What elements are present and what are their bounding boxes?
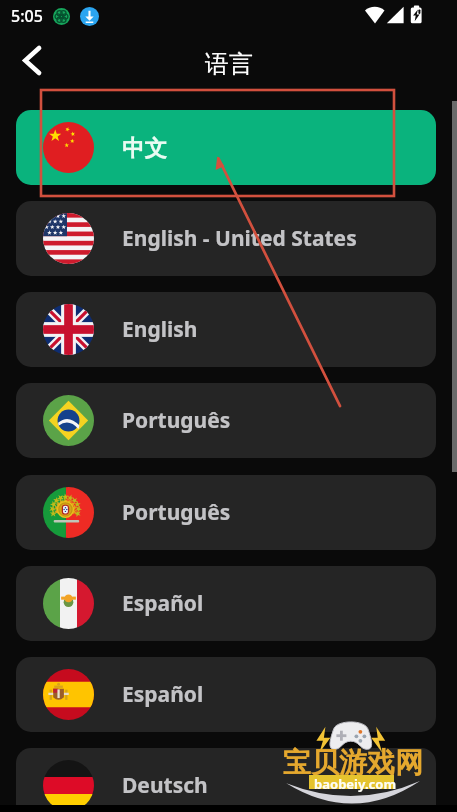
button[interactable]: Português: [16, 383, 436, 458]
staticText: English - United States: [122, 224, 357, 253]
staticText: Español: [122, 680, 204, 709]
button[interactable]: 中文: [16, 110, 436, 185]
staticText: baobeiy.com: [314, 775, 397, 793]
button[interactable]: Português: [16, 475, 436, 550]
button[interactable]: English - United States: [16, 201, 436, 276]
staticText: 5:05: [11, 5, 43, 27]
staticText: Español: [122, 589, 204, 618]
button[interactable]: Español: [16, 566, 436, 641]
staticText: 宝贝游戏网: [283, 745, 423, 780]
button[interactable]: Back: [16, 44, 49, 77]
staticText: Português: [122, 498, 231, 527]
button[interactable]: Español: [16, 657, 436, 732]
staticText: 中文: [122, 134, 167, 162]
button[interactable]: Deutsch: [16, 748, 436, 812]
staticText: Deutsch: [122, 771, 208, 800]
staticText: Português: [122, 406, 231, 435]
button[interactable]: English: [16, 292, 436, 367]
staticText: 语言: [205, 49, 253, 79]
staticText: English: [122, 315, 198, 344]
